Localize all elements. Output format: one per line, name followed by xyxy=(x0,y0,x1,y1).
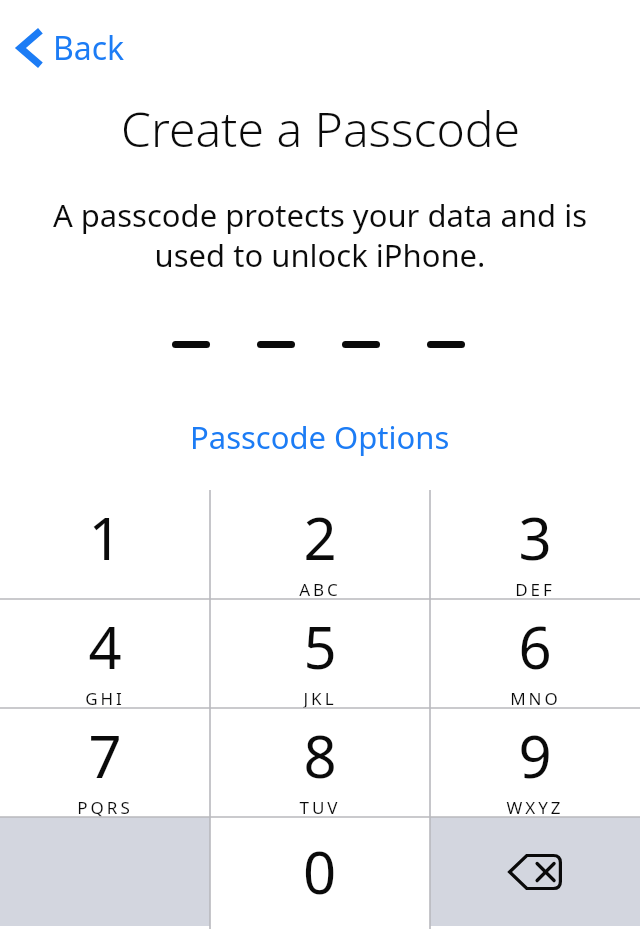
button[interactable]: 5 xyxy=(210,599,430,708)
staticText: PQRS xyxy=(77,796,133,817)
staticText: 0 xyxy=(303,832,337,911)
button[interactable]: 0 xyxy=(210,817,430,926)
button[interactable]: 6 xyxy=(430,599,640,708)
staticText: 9 xyxy=(518,716,552,795)
staticText: MNO xyxy=(510,687,561,708)
staticText: WXYZ xyxy=(506,796,564,817)
staticText: 1 xyxy=(88,498,122,577)
staticText: Create a Passcode xyxy=(121,96,520,161)
staticText: JKL xyxy=(303,687,337,708)
button[interactable]: Delete xyxy=(430,817,640,926)
button[interactable]: 8 xyxy=(210,708,430,817)
button[interactable]: Empty key xyxy=(0,817,210,926)
staticText: 6 xyxy=(518,607,552,686)
button[interactable]: 3 xyxy=(430,490,640,599)
staticText: 4 xyxy=(88,607,122,686)
staticText: Back xyxy=(53,26,125,70)
staticText: TUV xyxy=(299,796,341,817)
button[interactable]: 9 xyxy=(430,708,640,817)
staticText: 8 xyxy=(303,716,337,795)
staticText: ABC xyxy=(299,578,341,599)
staticText: 3 xyxy=(518,498,552,577)
staticText: 7 xyxy=(88,716,122,795)
staticText: Passcode Options xyxy=(190,416,450,458)
button[interactable]: Passcode Options xyxy=(180,414,460,460)
button[interactable]: 4 xyxy=(0,599,210,708)
staticText: DEF xyxy=(515,578,555,599)
staticText: A passcode protects your data and is use… xyxy=(28,194,612,276)
staticText: GHI xyxy=(85,687,125,708)
button[interactable]: Back xyxy=(10,24,137,72)
button[interactable]: 2 xyxy=(210,490,430,599)
button[interactable]: 7 xyxy=(0,708,210,817)
button[interactable]: 1 xyxy=(0,490,210,599)
staticText: 2 xyxy=(303,498,337,577)
staticText: 5 xyxy=(303,607,337,686)
